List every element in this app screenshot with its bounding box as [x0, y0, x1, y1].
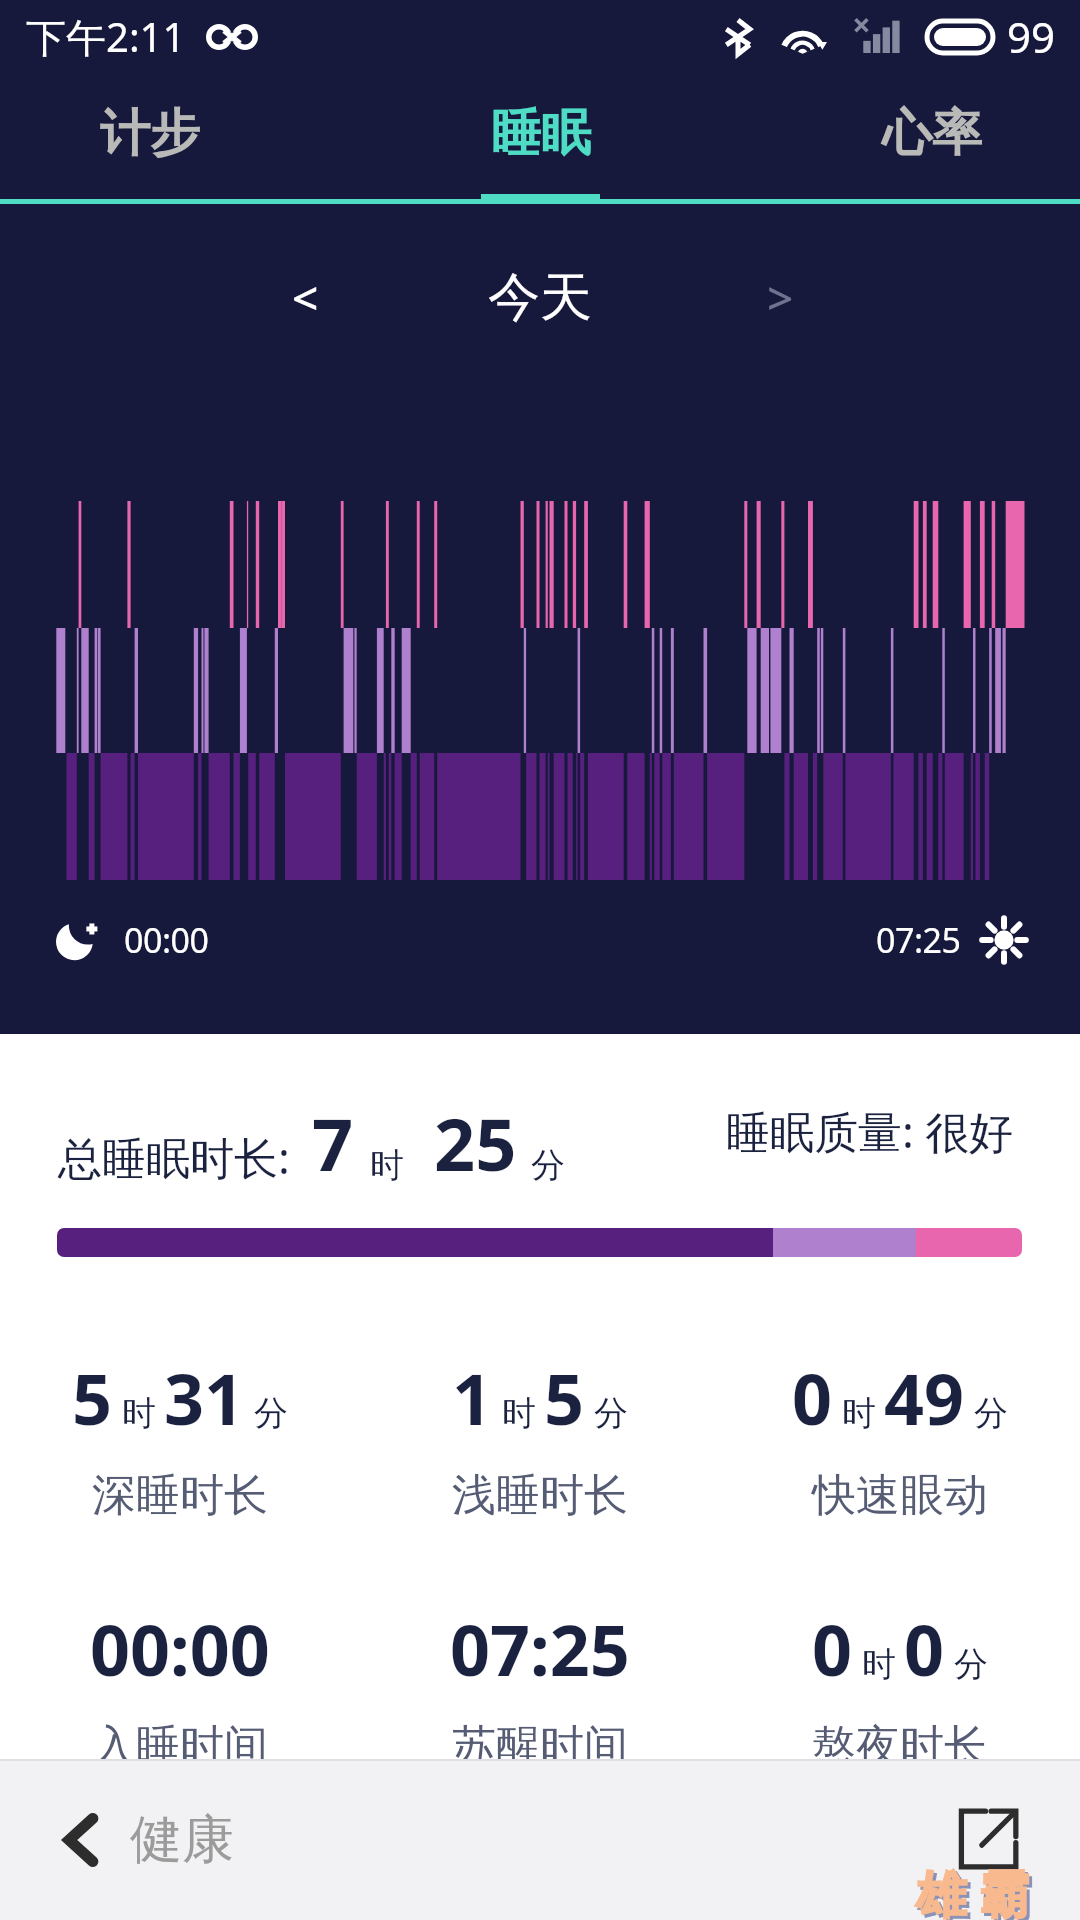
- staticText: 时: [370, 1144, 404, 1187]
- staticText: 分: [531, 1144, 565, 1187]
- staticText: 分: [254, 1392, 288, 1435]
- button[interactable]: 计步: [65, 86, 235, 181]
- staticText: 5: [72, 1350, 113, 1445]
- staticText: >: [767, 266, 794, 329]
- staticText: 分: [954, 1643, 988, 1686]
- staticText: 49: [884, 1350, 965, 1445]
- staticText: 31: [164, 1350, 245, 1445]
- button[interactable]: Previous day: [250, 250, 360, 345]
- staticText: 时: [842, 1392, 876, 1435]
- staticText: 熬夜时长: [812, 1719, 988, 1774]
- staticText: 心率: [882, 102, 982, 165]
- staticText: 健康: [130, 1807, 234, 1873]
- staticText: 时: [862, 1643, 896, 1686]
- staticText: 0: [904, 1601, 945, 1696]
- staticText: 苏醒时间: [452, 1719, 628, 1774]
- staticText: 分: [594, 1392, 628, 1435]
- staticText: 快速眼动: [812, 1468, 988, 1523]
- button[interactable]: 健康: [54, 1777, 234, 1903]
- staticText: 总睡眠时长:: [58, 1127, 290, 1187]
- staticText: 浅睡时长: [452, 1468, 628, 1523]
- staticText: 睡眠质量: 很好: [726, 1101, 1014, 1161]
- staticText: 07:25: [450, 1601, 630, 1696]
- staticText: 5: [544, 1350, 585, 1445]
- staticText: 0: [792, 1350, 833, 1445]
- button[interactable]: 睡眠: [456, 86, 626, 181]
- staticText: 7: [312, 1094, 354, 1192]
- button[interactable]: Open in new window: [947, 1798, 1029, 1880]
- button[interactable]: Next day: [725, 250, 835, 345]
- staticText: 25: [434, 1094, 517, 1192]
- staticText: 时: [122, 1392, 156, 1435]
- staticText: 下午2:11: [26, 9, 186, 64]
- staticText: 入睡时间: [92, 1719, 268, 1774]
- staticText: 今天: [488, 265, 592, 331]
- staticText: 99: [1007, 8, 1056, 65]
- staticText: 时: [502, 1392, 536, 1435]
- staticText: 分: [974, 1392, 1008, 1435]
- staticText: 雄 霸: [916, 1859, 1029, 1920]
- staticText: 07:25: [876, 917, 961, 963]
- staticText: 1: [452, 1350, 493, 1445]
- staticText: 00:00: [124, 917, 209, 963]
- button[interactable]: 今天: [430, 250, 650, 345]
- staticText: 00:00: [90, 1601, 270, 1696]
- staticText: <: [292, 266, 319, 329]
- staticText: 深睡时长: [92, 1468, 268, 1523]
- staticText: 雄 霸: [919, 1862, 1032, 1920]
- staticText: 0: [812, 1601, 853, 1696]
- staticText: 计步: [100, 102, 200, 165]
- button[interactable]: 心率: [847, 86, 1017, 181]
- staticText: 睡眠: [491, 102, 591, 165]
